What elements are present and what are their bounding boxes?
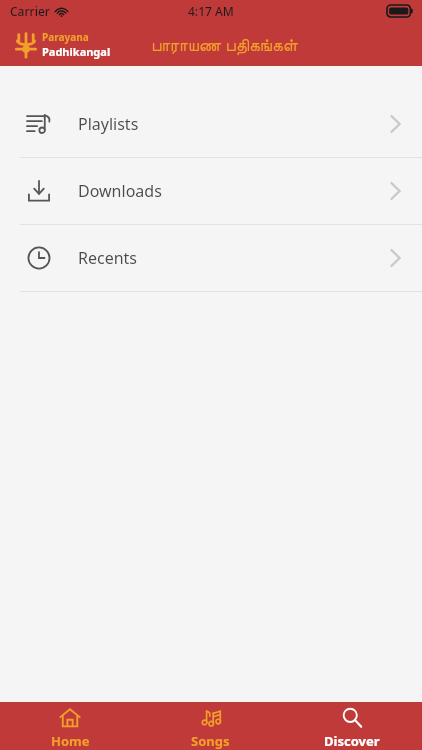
button[interactable]: Recents [0,225,422,291]
staticText: Playlists [78,113,391,135]
button[interactable]: Parayana Padhikangal home [14,30,111,59]
staticText: Padhikangal [42,44,111,59]
staticText: Recents [78,247,391,269]
button[interactable]: Downloads [0,158,422,224]
staticText: Discover [324,732,380,750]
button[interactable]: Playlists [0,91,422,157]
button[interactable]: Discover [281,702,422,750]
button[interactable]: Songs [140,702,281,750]
staticText: Downloads [78,180,391,202]
staticText: 4:17 AM [188,3,234,19]
staticText: Parayana [42,30,89,44]
button[interactable]: Home [0,702,140,750]
staticText: பாராயண பதிகங்கள் [151,33,298,56]
staticText: Home [51,732,90,750]
staticText: Songs [191,732,230,750]
staticText: Carrier [10,3,50,19]
